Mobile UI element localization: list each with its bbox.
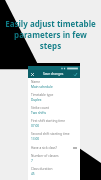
button[interactable]: Close [30,72,35,77]
staticText: Name [31,80,40,84]
button[interactable]: Name [28,78,80,91]
staticText: Main schedule [31,85,53,89]
staticText: 45 [31,172,35,176]
staticText: Second shift starting time [31,132,70,136]
staticText: 07:00 [31,124,40,128]
staticText: Two shifts [31,111,47,115]
button[interactable]: Number of classes [28,152,80,165]
staticText: Class duration [31,167,53,171]
staticText: Timetable type [31,93,54,97]
button[interactable]: Have a sick class? [28,143,80,152]
button[interactable]: Second shift starting time [28,130,80,143]
button[interactable]: First shift starting time [28,117,80,130]
staticText: Number of classes [31,154,59,158]
button[interactable]: Class duration [28,165,80,178]
button[interactable]: Strike count [28,104,80,117]
staticText: Save changes [43,72,64,76]
staticText: Strike count [31,106,49,110]
button[interactable]: Timetable type [28,91,80,104]
staticText: 7 [31,159,33,163]
staticText: Duplex [31,98,42,102]
staticText: First shift starting time [31,119,65,123]
staticText: Have a sick class? [31,146,57,150]
staticText: Easily adjust timetable parameters in fe… [3,18,98,51]
button[interactable]: Save [73,72,78,77]
staticText: 13:00 [31,137,40,141]
